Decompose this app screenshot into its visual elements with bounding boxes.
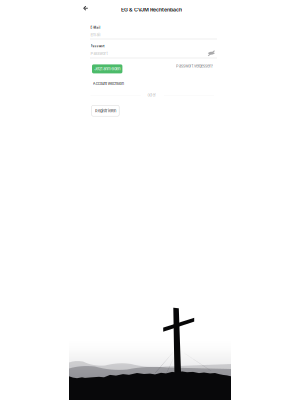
staticText: Passwort: [91, 44, 105, 48]
button[interactable]: Registrieren: [92, 105, 119, 116]
staticText: oder: [147, 93, 156, 98]
staticText: Account wechseln: [93, 81, 124, 86]
button[interactable]: Passwort vergessen?: [176, 64, 213, 68]
button[interactable]: Account wechseln: [93, 81, 124, 86]
staticText: Jetzt anmelden: [94, 66, 120, 71]
staticText: Passwort: [91, 51, 108, 56]
staticText: Registrieren: [95, 108, 116, 113]
button[interactable]: Show password: [208, 51, 215, 56]
staticText: E-Mail: [91, 26, 101, 29]
staticText: Email: [91, 32, 101, 37]
button[interactable]: Back: [83, 6, 88, 11]
staticText: Passwort vergessen?: [176, 64, 213, 68]
button[interactable]: Jetzt anmelden: [92, 64, 122, 73]
staticText: EG & CVJM Rechtenbach: [121, 6, 182, 13]
